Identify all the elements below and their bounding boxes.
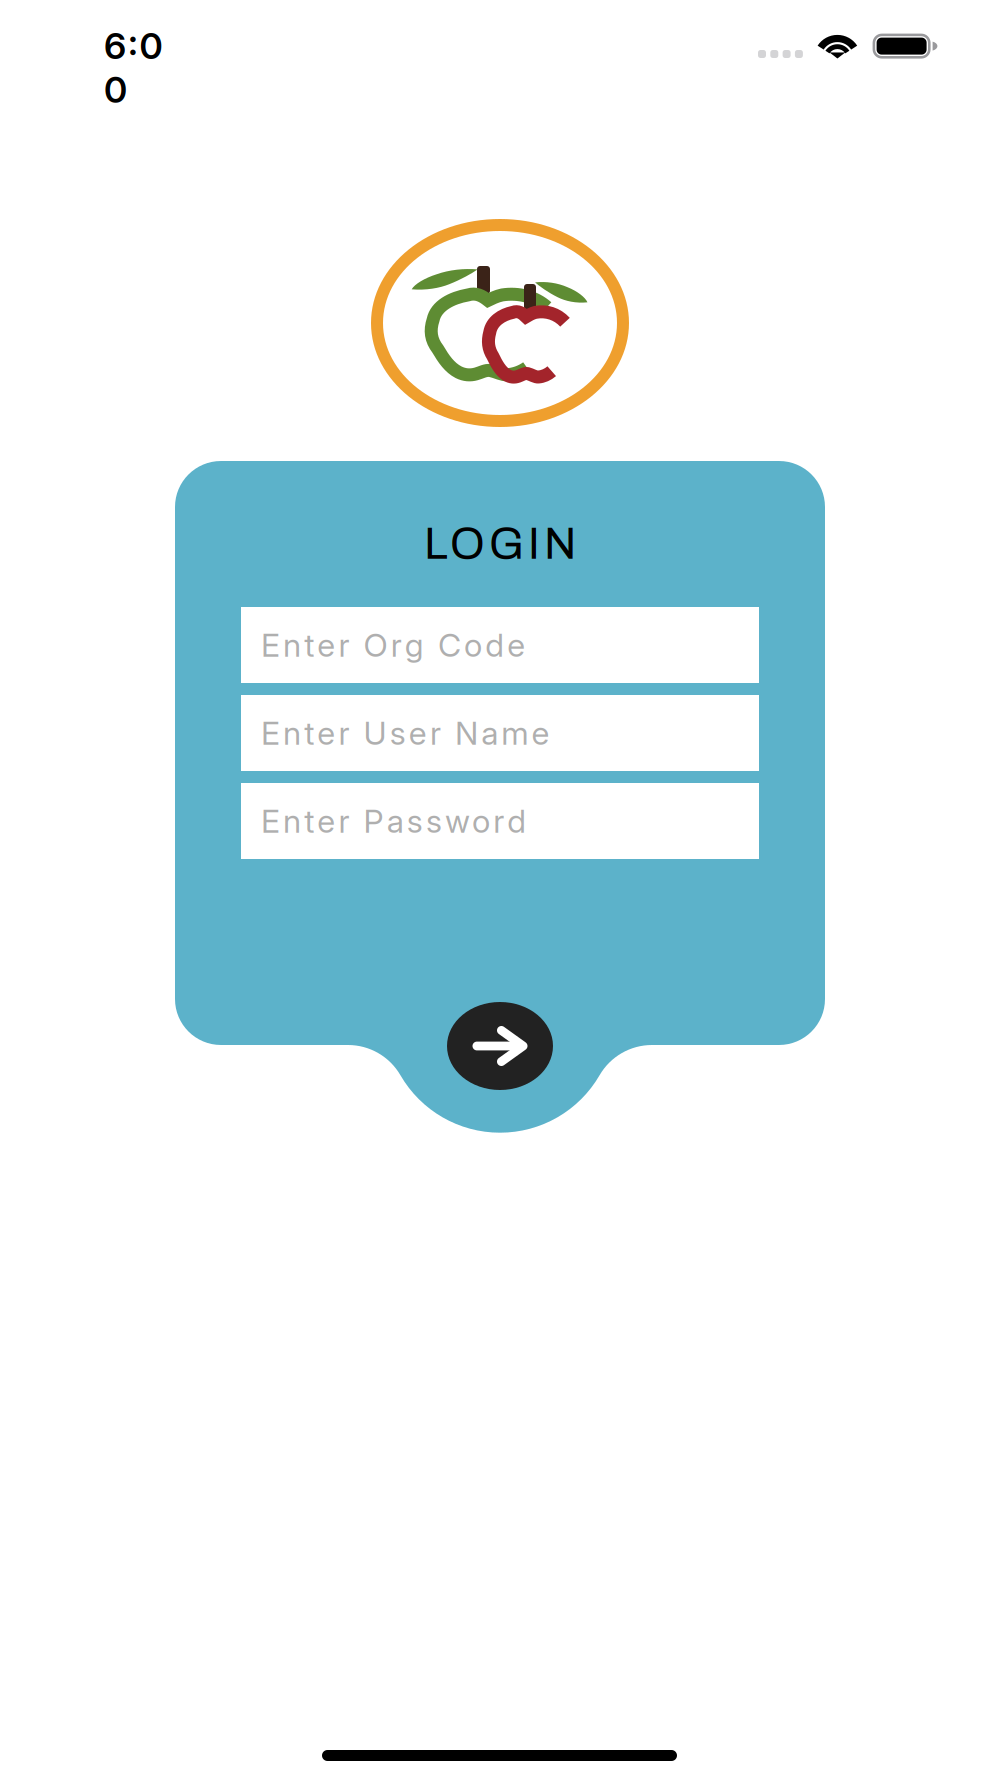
button[interactable]: Enter Org Code: [241, 607, 759, 683]
staticText: Enter Org Code: [261, 626, 525, 664]
button[interactable]: Enter User Name: [241, 695, 759, 771]
staticText: Enter Password: [261, 802, 526, 840]
staticText: Enter User Name: [261, 714, 549, 752]
button[interactable]: Sign in: [447, 1002, 553, 1090]
button[interactable]: Enter Password: [241, 783, 759, 859]
staticText: 6:00: [104, 24, 188, 68]
staticText: LOGIN: [424, 520, 576, 568]
